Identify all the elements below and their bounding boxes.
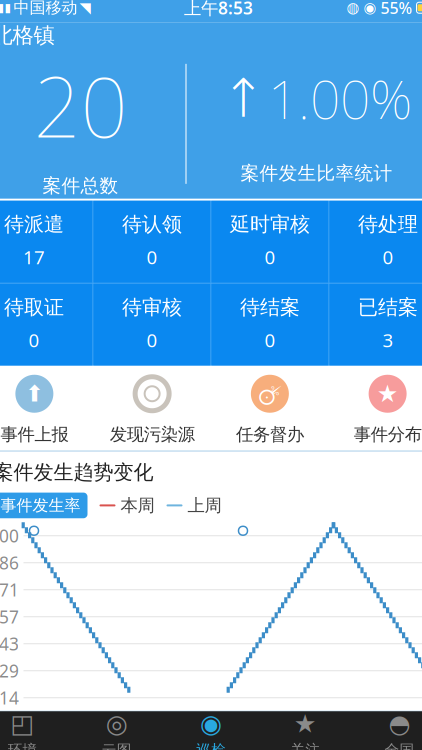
staticText: 环境	[8, 741, 38, 750]
staticText: ⬆	[25, 381, 44, 407]
staticText: 0	[382, 245, 393, 269]
staticText: 待派遣	[4, 212, 64, 237]
button[interactable]: ◉	[164, 711, 258, 750]
button[interactable]	[93, 374, 211, 445]
staticText: 巡检	[196, 741, 226, 750]
button[interactable]: 待处理	[329, 201, 422, 283]
button[interactable]: 已结案	[329, 284, 422, 366]
staticText: 55%	[380, 0, 412, 18]
staticText: 北格镇	[0, 22, 54, 48]
button[interactable]: 🜚	[211, 374, 329, 445]
staticText: 0.57	[0, 605, 19, 628]
staticText: 0	[264, 328, 275, 352]
staticText: 任务督办	[236, 424, 304, 445]
staticText: ◉	[363, 0, 376, 16]
staticText: 0	[28, 328, 39, 352]
staticText: ★	[294, 709, 317, 738]
staticText: 发现污染源	[110, 424, 195, 445]
staticText: 0	[146, 245, 157, 269]
staticText: 1.00%	[268, 63, 412, 134]
staticText: 待审核	[122, 295, 182, 320]
staticText: 待认领	[122, 212, 182, 237]
staticText: ★	[377, 380, 399, 407]
staticText: 17	[23, 245, 45, 269]
button[interactable]: ◓	[352, 711, 422, 750]
staticText: ◎	[106, 709, 128, 738]
staticText: 事件上报	[0, 424, 68, 445]
staticText: 全国	[384, 741, 414, 750]
staticText: 3	[382, 328, 393, 352]
staticText: 待结案	[240, 295, 300, 320]
staticText: 上周	[187, 495, 221, 516]
button[interactable]: 待取证	[0, 284, 92, 366]
staticText: 事件分布	[354, 424, 422, 445]
staticText: ↑	[221, 68, 266, 129]
button[interactable]: ◎	[70, 711, 164, 750]
staticText: 中国移动	[13, 0, 77, 18]
staticText: ◥	[79, 0, 90, 16]
button[interactable]: ⬆	[0, 374, 93, 445]
staticText: 本周	[120, 495, 154, 516]
staticText: 0	[264, 245, 275, 269]
staticText: 待取证	[4, 295, 64, 320]
staticText: 0.43	[0, 632, 19, 655]
staticText: 1.00	[0, 524, 19, 547]
button[interactable]: ◰	[0, 711, 70, 750]
button[interactable]: 待派遣	[0, 201, 92, 283]
staticText: 待处理	[358, 212, 418, 237]
staticText: ◍	[346, 0, 359, 16]
button[interactable]: ★	[329, 374, 422, 445]
staticText: 0.29	[0, 659, 19, 682]
staticText: 0	[146, 328, 157, 352]
staticText: 云图	[102, 741, 132, 750]
staticText: ◓	[388, 709, 410, 738]
staticText: 案件发生比率统计	[240, 162, 392, 185]
staticText: 关注	[290, 741, 320, 750]
staticText: 🜚	[258, 370, 282, 418]
staticText: 0.71	[0, 578, 19, 601]
button[interactable]: 延时审核	[211, 201, 328, 283]
staticText: ◰	[11, 709, 35, 738]
button[interactable]: 待结案	[211, 284, 328, 366]
staticText: 延时审核	[230, 212, 310, 237]
staticText: 案件总数	[42, 174, 118, 197]
staticText: 0.86	[0, 551, 19, 574]
staticText: ◉	[200, 709, 222, 738]
button[interactable]: 待认领	[93, 201, 210, 283]
staticText: 20	[33, 50, 127, 160]
staticText: 已结案	[358, 295, 418, 320]
staticText: 事件发生率	[0, 496, 80, 515]
staticText: 上午8:53	[184, 0, 253, 19]
staticText: 0.14	[0, 686, 19, 709]
button[interactable]: ★	[258, 711, 352, 750]
staticText: 案件发生趋势变化	[0, 460, 153, 485]
button[interactable]: 待审核	[93, 284, 210, 366]
staticText: ▮▮▮▮	[0, 1, 11, 14]
